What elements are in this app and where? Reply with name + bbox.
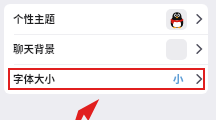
- button[interactable]: 个性主题: [4, 4, 208, 34]
- other: Chat background preview: [166, 39, 187, 60]
- button[interactable]: 聊天背景: [4, 34, 208, 64]
- staticText: 字体大小: [13, 71, 55, 86]
- staticText: 个性主题: [13, 11, 55, 26]
- staticText: 小: [173, 71, 184, 86]
- button[interactable]: 字体大小: [4, 64, 208, 94]
- other: Theme preview: [166, 9, 187, 30]
- staticText: 聊天背景: [13, 41, 55, 56]
